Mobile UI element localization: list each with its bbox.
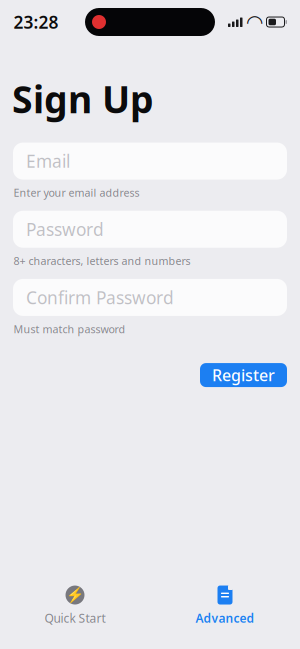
staticText: ◠ (247, 11, 262, 33)
button[interactable]: Email (13, 143, 287, 180)
button[interactable]: Register (200, 363, 287, 387)
staticText: Email (26, 150, 70, 173)
staticText: Enter your email address (13, 186, 139, 200)
staticText: Must match password (13, 322, 125, 336)
button[interactable]: Password (13, 211, 287, 248)
button[interactable]: ⚡ (0, 581, 150, 629)
staticText: 8+ characters, letters and numbers (13, 254, 190, 268)
staticText: 23:28 (13, 10, 58, 33)
staticText: ⚡ (66, 587, 84, 603)
staticText: Quick Start (44, 610, 105, 626)
staticText: Sign Up (12, 74, 154, 124)
staticText: Advanced (195, 610, 254, 626)
staticText: Password (26, 218, 104, 241)
staticText: Register (212, 364, 275, 386)
button[interactable]: Advanced (150, 581, 300, 629)
staticText: Confirm Password (26, 286, 174, 309)
button[interactable]: Confirm Password (13, 279, 287, 316)
